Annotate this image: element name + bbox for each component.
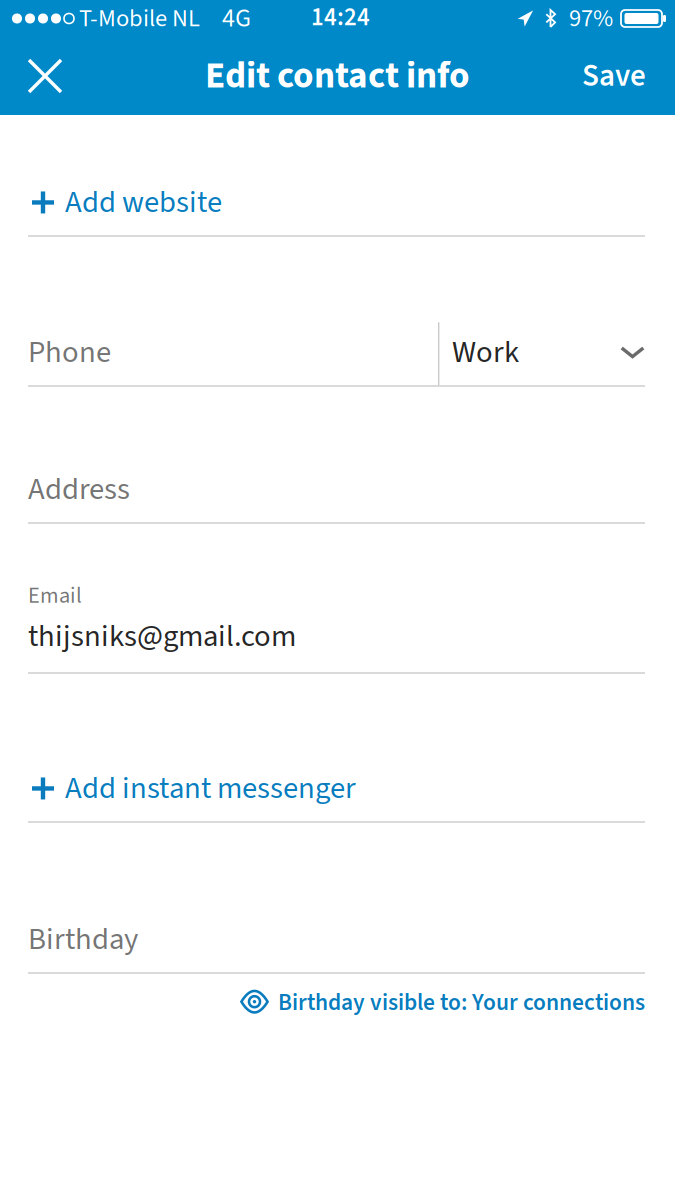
staticText: Save bbox=[582, 54, 646, 98]
staticText: 14:24 bbox=[311, 0, 370, 35]
staticText: Birthday bbox=[28, 918, 138, 961]
staticText: Add instant messenger bbox=[65, 767, 356, 810]
staticText: 4G bbox=[222, 0, 251, 37]
staticText: Work bbox=[452, 331, 519, 374]
staticText: Email bbox=[28, 580, 82, 612]
button[interactable]: Add website bbox=[0, 181, 675, 235]
button[interactable]: Phone type: Work bbox=[438, 311, 675, 374]
staticText: Phone bbox=[28, 331, 111, 374]
staticText: T-Mobile NL bbox=[79, 1, 200, 36]
button[interactable]: Add instant messenger bbox=[0, 767, 675, 821]
button[interactable]: Birthday visible to: Your connections bbox=[0, 974, 675, 1032]
staticText: Add website bbox=[65, 181, 222, 224]
staticText: Birthday visible to: Your connections bbox=[278, 986, 645, 1019]
button[interactable]: Save bbox=[560, 37, 675, 115]
staticText: 97% bbox=[569, 1, 613, 36]
staticText: Address bbox=[28, 468, 130, 511]
button[interactable]: Close bbox=[0, 37, 83, 115]
staticText: Edit contact info bbox=[205, 50, 470, 102]
staticText: thijsniks@gmail.com bbox=[28, 615, 296, 658]
